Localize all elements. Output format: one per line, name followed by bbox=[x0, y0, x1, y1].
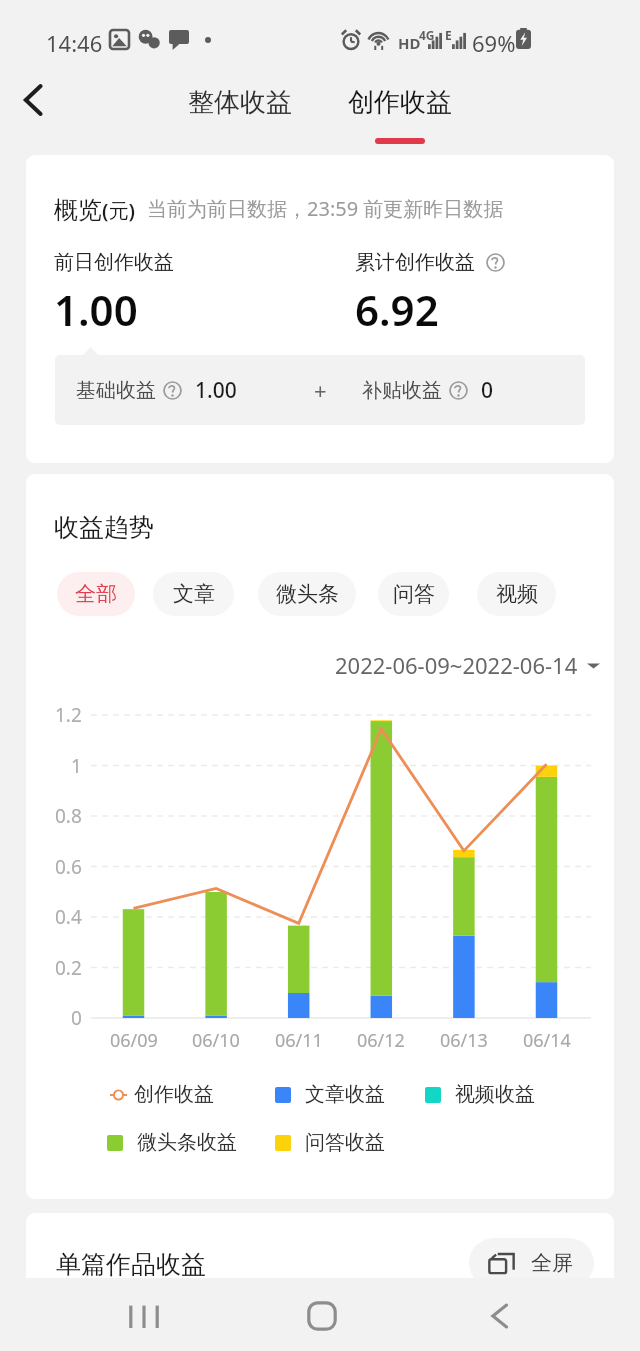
button[interactable]: Back bbox=[467, 1286, 531, 1346]
staticText: 0 bbox=[481, 376, 494, 405]
staticText: 2022-06-09~2022-06-14 bbox=[335, 650, 578, 680]
staticText: 1 bbox=[71, 753, 82, 779]
staticText: 1.00 bbox=[195, 376, 237, 405]
staticText: 视频收益 bbox=[455, 1082, 535, 1107]
staticText: 文章收益 bbox=[305, 1082, 385, 1107]
button[interactable]: Help bbox=[163, 381, 182, 400]
staticText: 创作收益 bbox=[348, 86, 452, 119]
button[interactable]: Help bbox=[449, 381, 468, 400]
staticText: 06/12 bbox=[357, 1028, 405, 1053]
staticText: 概览 bbox=[54, 195, 102, 225]
staticText: E bbox=[445, 27, 452, 43]
button[interactable]: 问答 bbox=[378, 572, 449, 616]
button[interactable]: Home bbox=[290, 1286, 354, 1346]
staticText: 06/10 bbox=[192, 1028, 240, 1053]
staticText: 14:46 bbox=[46, 28, 103, 58]
button[interactable]: 全部 bbox=[57, 572, 135, 616]
staticText: 累计创作收益 bbox=[355, 250, 475, 275]
staticText: 全屏 bbox=[531, 1250, 573, 1276]
button[interactable]: 2022-06-09~2022-06-14 bbox=[331, 646, 604, 684]
staticText: (元) bbox=[102, 197, 135, 224]
staticText: 微头条收益 bbox=[137, 1130, 237, 1155]
button[interactable]: 视频 bbox=[477, 572, 556, 616]
staticText: 微头条 bbox=[276, 581, 339, 607]
staticText: + bbox=[314, 375, 327, 405]
staticText: 06/14 bbox=[523, 1028, 571, 1053]
staticText: 1.2 bbox=[55, 702, 82, 728]
button[interactable]: 微头条 bbox=[258, 572, 356, 616]
staticText: 文章 bbox=[173, 581, 215, 607]
button[interactable]: 全屏 bbox=[469, 1238, 594, 1288]
staticText: 前日创作收益 bbox=[54, 250, 174, 275]
staticText: 06/11 bbox=[275, 1028, 323, 1053]
staticText: 补贴收益 bbox=[362, 378, 442, 403]
staticText: 基础收益 bbox=[76, 378, 156, 403]
staticText: 69% bbox=[472, 28, 516, 58]
staticText: 当前为前日数据，23:59 前更新昨日数据 bbox=[147, 195, 504, 222]
button[interactable]: 整体收益 bbox=[178, 78, 302, 127]
button[interactable]: 创作收益 bbox=[338, 78, 462, 152]
staticText: 整体收益 bbox=[188, 86, 292, 119]
staticText: 4G bbox=[419, 27, 435, 43]
staticText: 0.4 bbox=[55, 904, 82, 930]
staticText: 06/13 bbox=[440, 1028, 488, 1053]
staticText: 创作收益 bbox=[134, 1082, 214, 1107]
button[interactable]: 文章 bbox=[153, 572, 234, 616]
staticText: 0.2 bbox=[55, 955, 82, 981]
staticText: HD bbox=[398, 33, 421, 53]
staticText: 0.6 bbox=[55, 854, 82, 880]
staticText: 问答 bbox=[393, 581, 435, 607]
staticText: 0 bbox=[71, 1005, 82, 1031]
button[interactable]: Recents bbox=[112, 1286, 176, 1346]
staticText: 6.92 bbox=[355, 281, 439, 338]
button[interactable]: Back bbox=[7, 74, 59, 126]
staticText: 0.8 bbox=[55, 803, 82, 829]
staticText: 1.00 bbox=[54, 281, 138, 338]
button[interactable]: Help bbox=[486, 253, 505, 272]
staticText: 06/09 bbox=[110, 1028, 158, 1053]
staticText: 收益趋势 bbox=[54, 512, 154, 543]
staticText: 视频 bbox=[496, 581, 538, 607]
staticText: 单篇作品收益 bbox=[56, 1249, 206, 1280]
staticText: 全部 bbox=[75, 581, 117, 607]
staticText: 问答收益 bbox=[305, 1130, 385, 1155]
